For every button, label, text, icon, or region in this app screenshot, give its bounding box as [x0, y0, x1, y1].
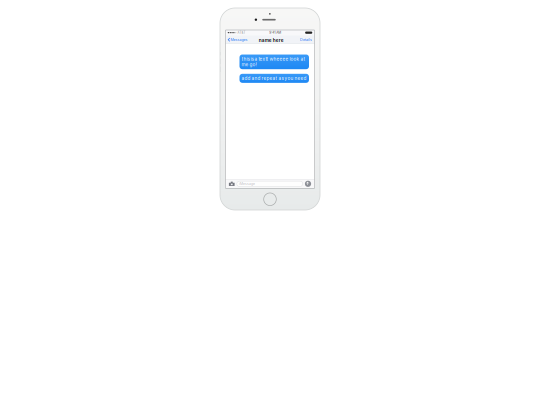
- button[interactable]: Send: [305, 181, 311, 187]
- staticText: Messages: [231, 37, 248, 42]
- staticText: AT&T: [238, 31, 246, 34]
- button[interactable]: Messages: [227, 36, 248, 43]
- button[interactable]: Camera: [229, 182, 235, 186]
- staticText: this is a textt wheeee look at me go!: [241, 56, 305, 67]
- staticText: name here: [259, 37, 284, 43]
- staticText: 9:41 AM: [269, 31, 281, 35]
- staticText: add and repeat as you need: [241, 75, 306, 81]
- staticText: iMessage: [239, 182, 255, 186]
- button[interactable]: Details: [299, 36, 313, 43]
- staticText: Details: [300, 37, 312, 42]
